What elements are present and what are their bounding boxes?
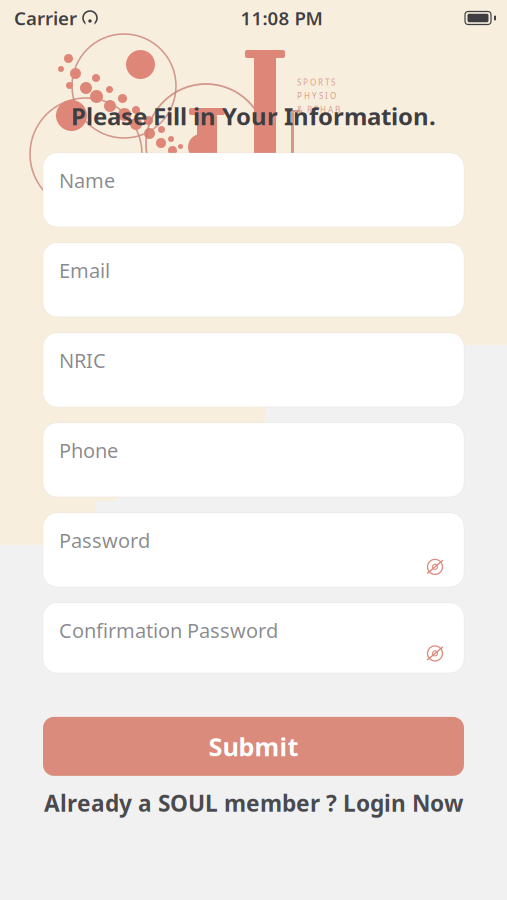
- staticText: Carrier: [14, 6, 77, 30]
- staticText: P H Y S I O: [297, 91, 336, 101]
- button[interactable]: Confirmation Password: [43, 603, 464, 673]
- staticText: Name: [59, 167, 115, 193]
- staticText: Please Fill in Your Information.: [71, 100, 436, 132]
- button[interactable]: NRIC: [43, 333, 464, 407]
- button[interactable]: Submit: [43, 717, 464, 776]
- button[interactable]: Already a SOUL member ? Login Now: [43, 788, 464, 818]
- button[interactable]: Phone: [43, 423, 464, 497]
- staticText: Submit: [208, 730, 298, 763]
- staticText: Phone: [59, 437, 118, 463]
- staticText: Confirmation Password: [59, 617, 278, 643]
- button[interactable]: Password: [43, 513, 464, 587]
- staticText: Password: [59, 527, 150, 553]
- staticText: S P O R T S: [297, 77, 335, 88]
- button[interactable]: Name: [43, 153, 464, 227]
- staticText: NRIC: [59, 347, 106, 373]
- staticText: & R E H A B: [297, 104, 340, 115]
- button[interactable]: Email: [43, 243, 464, 317]
- staticText: Email: [59, 257, 110, 283]
- staticText: Already a SOUL member ? Login Now: [44, 788, 463, 818]
- staticText: 11:08 PM: [240, 6, 322, 30]
